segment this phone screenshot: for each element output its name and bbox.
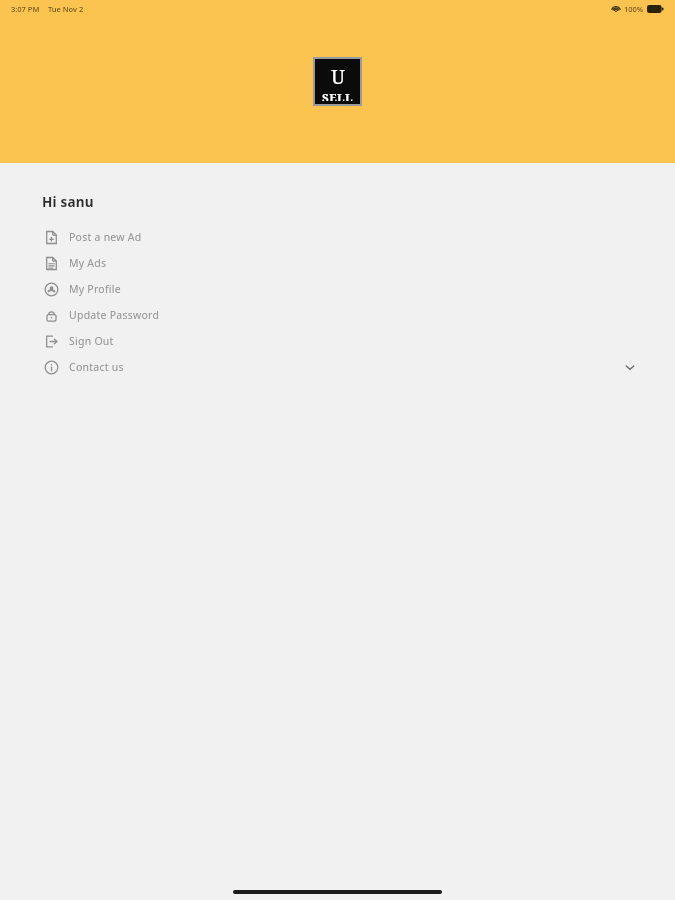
button[interactable]: Post a new Ad — [0, 224, 675, 250]
staticText: My Profile — [69, 282, 121, 296]
staticText: My Ads — [69, 256, 107, 270]
button[interactable]: Update Password — [0, 302, 675, 328]
button[interactable]: My Ads — [0, 250, 675, 276]
staticText: Post a new Ad — [69, 230, 142, 244]
button[interactable]: Contact us — [0, 354, 675, 380]
staticText: 100% — [624, 4, 644, 14]
staticText: Tue Nov 2 — [48, 4, 84, 14]
staticText: U — [331, 64, 345, 90]
staticText: Hi sanu — [42, 193, 94, 211]
staticText: SELL — [322, 90, 353, 101]
staticText: Contact us — [69, 360, 124, 374]
staticText: 3:07 PM — [11, 4, 40, 14]
button[interactable]: My Profile — [0, 276, 675, 302]
button[interactable]: Sign Out — [0, 328, 675, 354]
staticText: Update Password — [69, 308, 160, 322]
other: USell logo — [315, 59, 360, 104]
staticText: Sign Out — [69, 334, 114, 348]
